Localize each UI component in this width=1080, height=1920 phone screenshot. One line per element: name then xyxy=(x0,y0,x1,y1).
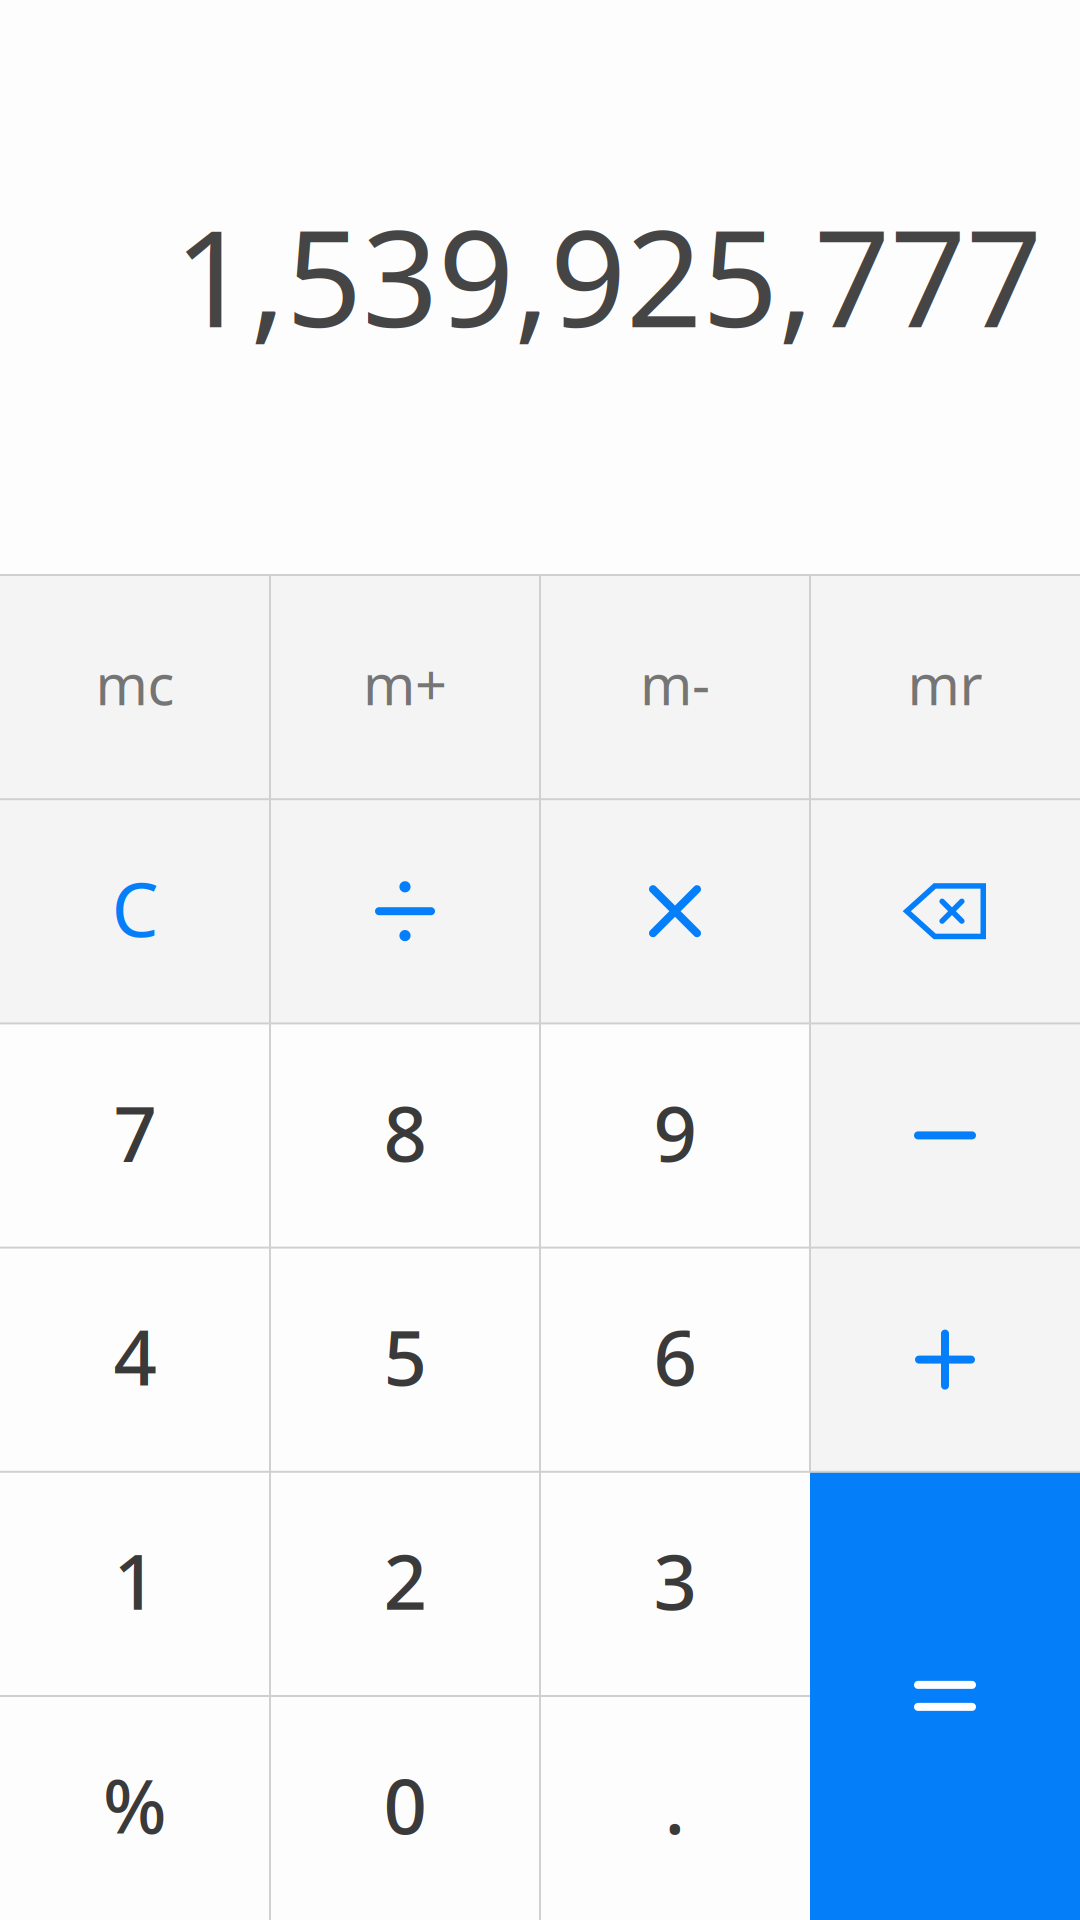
button[interactable]: Multiply xyxy=(540,799,810,1023)
staticText: 1 xyxy=(113,1530,156,1631)
button[interactable]: 4 xyxy=(0,1247,270,1472)
staticText: m+ xyxy=(363,646,447,721)
staticText: mc xyxy=(95,646,174,721)
button[interactable]: 2 xyxy=(270,1472,540,1696)
button[interactable]: Plus xyxy=(810,1247,1080,1472)
staticText: m- xyxy=(640,646,710,721)
staticText: 0 xyxy=(383,1754,426,1855)
button[interactable]: mc xyxy=(0,575,270,799)
staticText: 5 xyxy=(383,1306,426,1406)
button[interactable]: m+ xyxy=(270,575,540,799)
staticText: 4 xyxy=(113,1306,156,1406)
button[interactable]: Divide xyxy=(270,799,540,1023)
staticText: 7 xyxy=(113,1081,156,1182)
staticText: 6 xyxy=(653,1306,696,1406)
button[interactable]: . xyxy=(540,1696,810,1920)
button[interactable]: 7 xyxy=(0,1023,270,1247)
button[interactable]: 9 xyxy=(540,1023,810,1247)
button[interactable]: % xyxy=(0,1696,270,1920)
button[interactable]: 1 xyxy=(0,1472,270,1696)
button[interactable]: 3 xyxy=(540,1472,810,1696)
button[interactable]: mr xyxy=(810,575,1080,799)
button[interactable]: 0 xyxy=(270,1696,540,1920)
staticText: C xyxy=(111,858,158,957)
staticText: mr xyxy=(907,646,982,721)
button[interactable]: 6 xyxy=(540,1247,810,1472)
button[interactable]: 8 xyxy=(270,1023,540,1247)
staticText: 1,539,925,777 xyxy=(174,187,1042,364)
staticText: % xyxy=(103,1755,167,1854)
staticText: 3 xyxy=(653,1530,696,1631)
staticText: . xyxy=(664,1754,685,1855)
button[interactable]: Backspace xyxy=(810,799,1080,1023)
button[interactable]: 5 xyxy=(270,1247,540,1472)
button[interactable]: Minus xyxy=(810,1023,1080,1247)
staticText: 9 xyxy=(653,1081,696,1182)
staticText: 2 xyxy=(383,1530,426,1631)
button[interactable]: C xyxy=(0,799,270,1023)
button[interactable]: m- xyxy=(540,575,810,799)
button[interactable]: Equals xyxy=(810,1472,1080,1920)
staticText: 8 xyxy=(383,1081,426,1182)
